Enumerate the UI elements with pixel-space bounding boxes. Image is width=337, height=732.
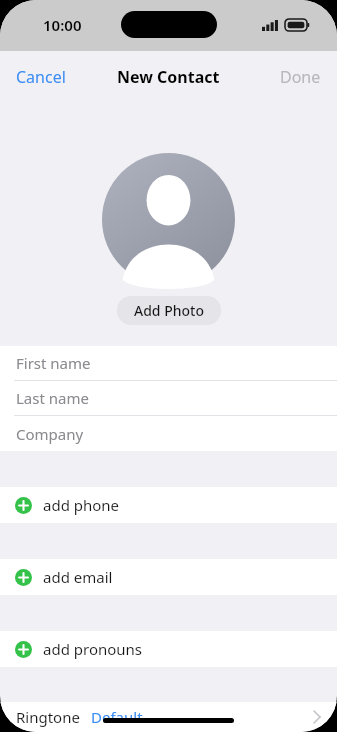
- staticText: New Contact: [117, 66, 220, 88]
- button[interactable]: Done: [264, 56, 337, 98]
- button[interactable]: add email: [0, 559, 337, 595]
- staticText: Cancel: [16, 66, 66, 88]
- staticText: Company: [16, 424, 84, 444]
- staticText: Ringtone: [16, 707, 80, 727]
- button[interactable]: add phone: [0, 487, 337, 523]
- other: More: [313, 710, 321, 724]
- button[interactable]: add pronouns: [0, 631, 337, 667]
- staticText: 10:00: [43, 15, 82, 35]
- button[interactable]: Last name: [0, 381, 337, 416]
- staticText: Done: [280, 66, 321, 88]
- button[interactable]: Add Photo: [117, 296, 221, 325]
- staticText: add pronouns: [43, 639, 143, 659]
- button[interactable]: Ringtone: [0, 702, 337, 732]
- staticText: First name: [16, 353, 91, 373]
- staticText: Last name: [16, 388, 89, 408]
- staticText: add email: [43, 567, 113, 587]
- button[interactable]: Cancel: [0, 56, 82, 98]
- button[interactable]: Company: [0, 416, 337, 451]
- staticText: add phone: [43, 495, 120, 515]
- staticText: Default: [91, 707, 143, 727]
- staticText: Add Photo: [134, 301, 204, 320]
- button[interactable]: First name: [0, 346, 337, 381]
